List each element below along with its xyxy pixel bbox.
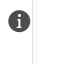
button[interactable]: Info: [8, 10, 30, 32]
